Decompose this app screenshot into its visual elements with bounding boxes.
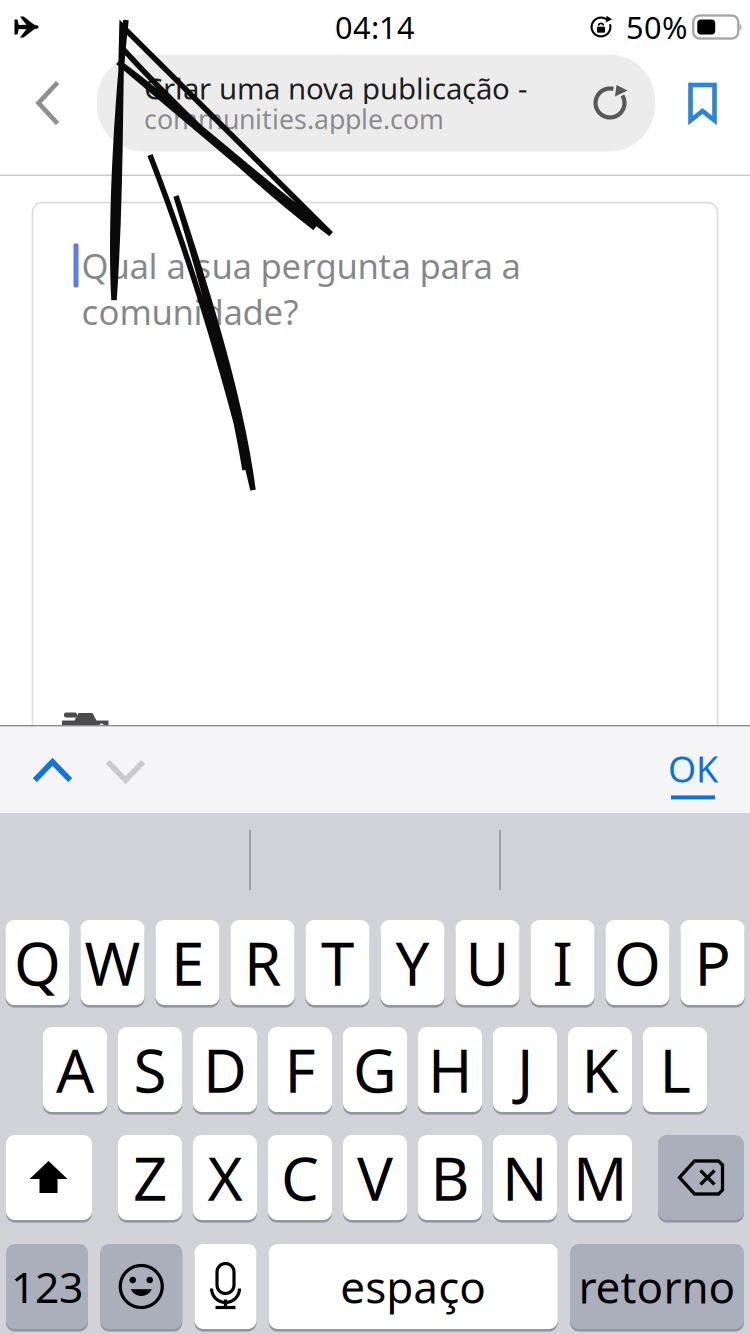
staticText: S <box>133 1030 166 1109</box>
button[interactable]: S <box>118 1025 182 1114</box>
button[interactable]: Dictation <box>194 1242 256 1331</box>
button[interactable]: O <box>605 918 669 1007</box>
staticText: P <box>694 923 730 1002</box>
staticText: D <box>203 1030 247 1109</box>
button[interactable]: espaço <box>269 1242 558 1331</box>
button[interactable]: E <box>155 918 219 1007</box>
button[interactable]: R <box>230 918 294 1007</box>
staticText: W <box>84 923 140 1002</box>
staticText: G <box>353 1030 397 1109</box>
staticText: I <box>552 923 572 1002</box>
staticText: communities.apple.com <box>144 101 444 137</box>
staticText: N <box>502 1138 548 1217</box>
button[interactable]: D <box>193 1025 257 1114</box>
staticText: V <box>357 1138 393 1217</box>
button[interactable]: P <box>680 918 744 1007</box>
button[interactable]: Shift <box>6 1133 92 1222</box>
button[interactable]: Z <box>118 1133 182 1222</box>
button[interactable]: L <box>643 1025 707 1114</box>
button[interactable]: B <box>418 1133 482 1222</box>
button[interactable]: Emoji <box>100 1242 182 1331</box>
button[interactable]: Back <box>0 55 97 151</box>
staticText: C <box>281 1138 319 1217</box>
staticText: 123 <box>11 1258 83 1315</box>
staticText: retorno <box>578 1257 735 1316</box>
staticText: espaço <box>340 1257 486 1316</box>
button[interactable]: A <box>43 1025 107 1114</box>
button[interactable]: M <box>568 1133 632 1222</box>
staticText: X <box>207 1138 242 1217</box>
button[interactable]: G <box>343 1025 407 1114</box>
staticText: F <box>284 1030 315 1109</box>
staticText: B <box>430 1138 469 1217</box>
button[interactable]: Bookmarks <box>655 55 750 151</box>
staticText: Z <box>133 1138 167 1217</box>
button[interactable]: Criar uma nova publicação - Comu <box>97 54 655 151</box>
button[interactable]: W <box>80 918 144 1007</box>
staticText: H <box>428 1030 472 1109</box>
button[interactable]: 123 <box>6 1242 88 1331</box>
staticText: L <box>659 1030 690 1109</box>
staticText: Qual a sua pergunta para a comunidade? <box>81 242 520 335</box>
button[interactable]: Next field <box>89 728 162 814</box>
staticText: A <box>56 1030 94 1109</box>
button[interactable]: I <box>530 918 594 1007</box>
staticText: U <box>465 923 509 1002</box>
staticText: R <box>244 923 281 1002</box>
staticText: 50% <box>626 7 687 47</box>
staticText: 04:14 <box>335 7 415 47</box>
staticText: Criar uma nova publicação - Comu <box>144 68 617 107</box>
staticText: J <box>517 1030 533 1109</box>
button[interactable]: J <box>493 1025 557 1114</box>
button[interactable]: K <box>568 1025 632 1114</box>
button[interactable]: C <box>268 1133 332 1222</box>
staticText: OK <box>668 745 718 792</box>
button[interactable]: N <box>493 1133 557 1222</box>
button[interactable]: OK <box>648 729 738 815</box>
staticText: O <box>614 923 661 1002</box>
staticText: M <box>573 1138 627 1217</box>
button[interactable]: H <box>418 1025 482 1114</box>
staticText: T <box>321 923 354 1002</box>
button[interactable]: Add photo <box>60 706 110 748</box>
button[interactable]: T <box>305 918 369 1007</box>
staticText: K <box>581 1030 618 1109</box>
staticText: E <box>171 923 204 1002</box>
button[interactable]: X <box>193 1133 257 1222</box>
button[interactable]: V <box>343 1133 407 1222</box>
button[interactable]: Previous field <box>16 728 89 814</box>
button[interactable]: U <box>455 918 519 1007</box>
button[interactable]: retorno <box>570 1242 744 1331</box>
button[interactable]: Q <box>5 918 69 1007</box>
button[interactable]: Delete <box>658 1133 744 1222</box>
staticText: Q <box>14 923 61 1002</box>
button[interactable]: Y <box>380 918 444 1007</box>
button[interactable]: F <box>268 1025 332 1114</box>
staticText: Y <box>395 923 429 1002</box>
